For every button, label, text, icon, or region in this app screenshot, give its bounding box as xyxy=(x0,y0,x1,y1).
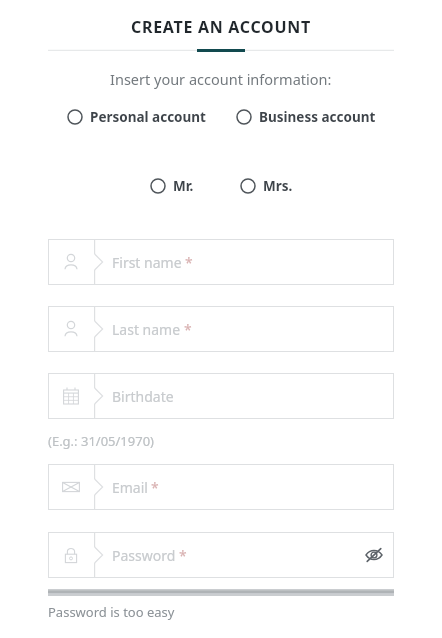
staticText: (E.g.: 31/05/1970) xyxy=(48,432,155,450)
staticText: Password is too easy xyxy=(48,603,175,621)
staticText: Personal account xyxy=(90,108,206,126)
button[interactable]: Mr. xyxy=(148,173,196,199)
staticText: Birthdate xyxy=(112,387,174,406)
staticText: Mrs. xyxy=(263,177,293,195)
staticText: Insert your account information: xyxy=(110,69,332,89)
staticText: Email xyxy=(112,478,148,497)
button[interactable]: Birthdate xyxy=(48,373,394,419)
staticText: * xyxy=(179,546,187,565)
button[interactable]: Mrs. xyxy=(238,173,295,199)
staticText: * xyxy=(184,320,192,339)
button[interactable]: First name xyxy=(48,239,394,285)
staticText: Business account xyxy=(259,108,376,126)
staticText: First name xyxy=(112,253,182,272)
button[interactable]: Business account xyxy=(234,104,378,130)
button[interactable]: Last name xyxy=(48,306,394,352)
staticText: Last name xyxy=(112,320,181,339)
staticText: Mr. xyxy=(173,177,194,195)
staticText: * xyxy=(185,253,193,272)
button[interactable]: Personal account xyxy=(65,104,208,130)
staticText: Password xyxy=(112,546,176,565)
staticText: * xyxy=(151,478,159,497)
button[interactable]: Password xyxy=(48,532,394,578)
button[interactable]: Email xyxy=(48,464,394,510)
button[interactable]: Show password xyxy=(354,532,394,578)
staticText: CREATE AN ACCOUNT xyxy=(131,16,311,38)
